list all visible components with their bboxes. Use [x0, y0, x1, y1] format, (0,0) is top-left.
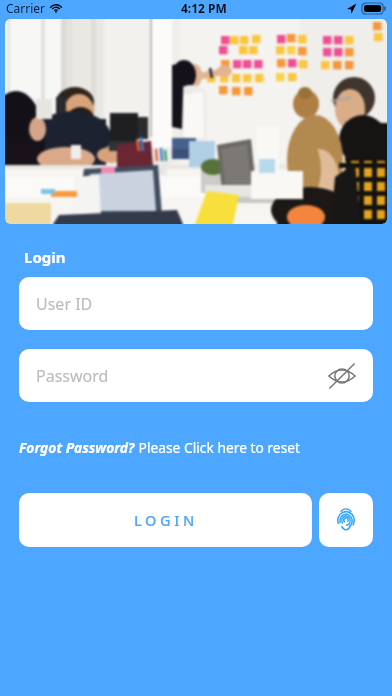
staticText: Forgot Password?	[19, 438, 135, 457]
staticText: Carrier	[6, 0, 46, 16]
staticText: Password	[36, 365, 109, 387]
button[interactable]: Show password	[324, 358, 360, 394]
button[interactable]: Fingerprint login	[319, 493, 373, 547]
button[interactable]: User ID	[19, 277, 373, 330]
staticText: LOGIN	[134, 510, 198, 530]
button[interactable]: Password	[19, 349, 373, 402]
button[interactable]: LOGIN	[19, 493, 312, 547]
button[interactable]: Forgot Password?	[19, 438, 300, 457]
staticText: Login	[24, 247, 66, 267]
staticText: Please Click here to reset	[135, 438, 300, 457]
staticText: 4:12 PM	[181, 0, 227, 16]
staticText: User ID	[36, 293, 93, 315]
